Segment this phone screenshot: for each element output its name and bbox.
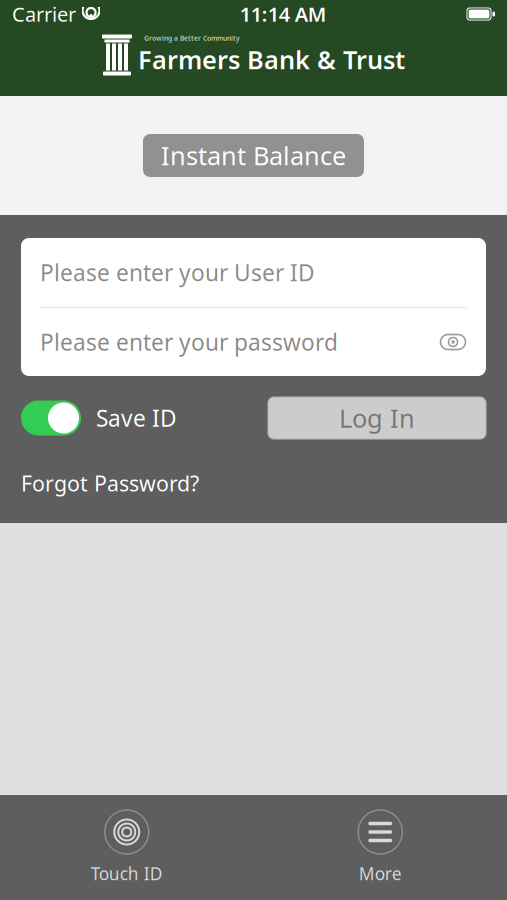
staticText: Please enter your User ID (40, 257, 315, 287)
staticText: Instant Balance (161, 139, 346, 172)
button[interactable]: Touch ID (67, 809, 187, 885)
staticText: Farmers Bank & Trust (138, 43, 405, 76)
staticText: Growing a Better Community (144, 34, 240, 43)
button[interactable]: Please enter your User ID (21, 238, 486, 307)
staticText: Please enter your password (40, 327, 338, 357)
button[interactable]: More (320, 809, 440, 885)
staticText: Forgot Password? (21, 469, 199, 497)
staticText: 11:14 AM (240, 1, 327, 27)
button[interactable]: Please enter your password (21, 308, 486, 376)
staticText: Touch ID (91, 862, 163, 885)
staticText: Save ID (96, 403, 177, 433)
staticText: Carrier (12, 1, 76, 27)
staticText: More (359, 862, 402, 885)
button[interactable]: Instant Balance (143, 134, 364, 177)
staticText: Log In (339, 401, 415, 435)
button[interactable]: Log In (268, 397, 486, 439)
button[interactable]: Save ID (21, 400, 177, 435)
button[interactable]: Forgot Password? (0, 463, 220, 503)
